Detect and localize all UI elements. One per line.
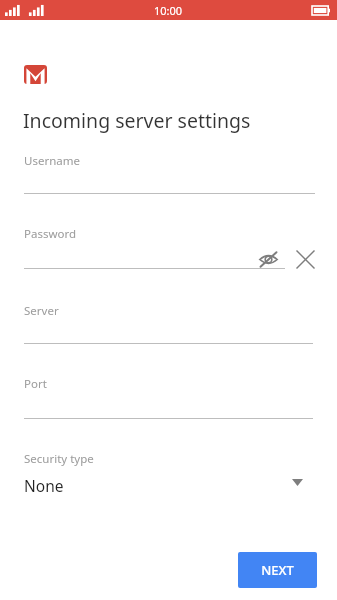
staticText: None <box>24 475 64 496</box>
staticText: Server <box>24 303 59 319</box>
button[interactable]: NEXT <box>238 552 317 588</box>
staticText: 10:00 <box>154 3 183 18</box>
staticText: Port <box>24 376 47 392</box>
staticText: Incoming server settings <box>23 107 251 134</box>
button[interactable]: Clear <box>291 245 319 273</box>
staticText: Security type <box>24 451 94 467</box>
button[interactable]: Port <box>0 368 337 416</box>
button[interactable]: Show password <box>254 245 282 273</box>
button[interactable]: Username <box>0 145 337 193</box>
staticText: Password <box>24 226 77 242</box>
button[interactable]: Password <box>0 218 337 266</box>
button[interactable]: Server <box>0 295 337 343</box>
staticText: NEXT <box>261 561 294 579</box>
button[interactable]: Security type <box>0 448 337 506</box>
staticText: Username <box>24 153 80 169</box>
